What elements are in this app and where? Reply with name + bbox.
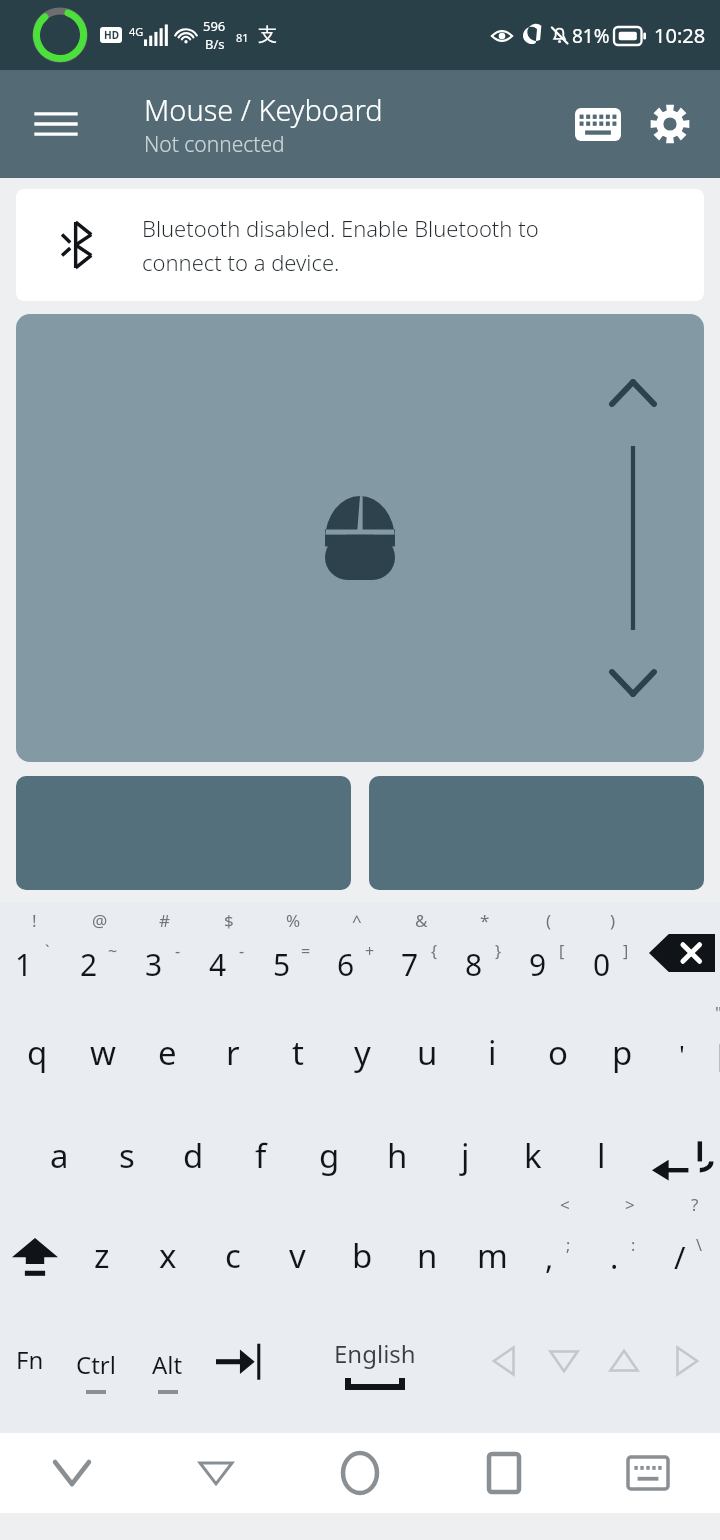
button[interactable]: Bluetooth disabled. Enable Bluetooth to: [16, 189, 704, 301]
button[interactable]: 5: [259, 903, 323, 1003]
button[interactable]: 8: [451, 903, 515, 1003]
button[interactable]: d: [160, 1109, 227, 1209]
staticText: @: [92, 909, 108, 932]
staticText: ): [610, 909, 616, 932]
staticText: *: [480, 909, 490, 932]
button[interactable]: Enter: [635, 1109, 720, 1209]
button[interactable]: h: [363, 1109, 431, 1209]
button[interactable]: x: [135, 1209, 200, 1309]
staticText: =: [301, 940, 311, 962]
button[interactable]: Left click: [16, 776, 351, 890]
button[interactable]: /: [655, 1209, 720, 1309]
button[interactable]: y: [330, 1003, 395, 1109]
staticText: p: [612, 1030, 633, 1075]
button[interactable]: Home: [288, 1433, 432, 1513]
button[interactable]: Show keyboard: [562, 88, 634, 160]
button[interactable]: Hide keyboard: [0, 1433, 144, 1513]
staticText: k: [524, 1133, 542, 1178]
staticText: i: [488, 1030, 497, 1075]
button[interactable]: 2: [65, 903, 130, 1003]
staticText: ?: [691, 1193, 699, 1216]
staticText: #: [159, 909, 170, 932]
button[interactable]: z: [69, 1209, 135, 1309]
staticText: ;: [566, 1234, 571, 1256]
button[interactable]: Settings: [634, 88, 706, 160]
button[interactable]: Space, English: [276, 1309, 474, 1433]
button[interactable]: Recent apps: [432, 1433, 576, 1513]
staticText: [: [559, 940, 565, 962]
button[interactable]: .: [590, 1209, 655, 1309]
button[interactable]: Arrow up: [594, 1309, 654, 1433]
staticText: ': [679, 1036, 685, 1071]
button[interactable]: j: [431, 1109, 499, 1209]
button[interactable]: Arrow left: [474, 1309, 534, 1433]
button[interactable]: n: [395, 1209, 460, 1309]
staticText: g: [319, 1133, 340, 1178]
button[interactable]: r: [200, 1003, 265, 1109]
staticText: w: [90, 1030, 116, 1075]
button[interactable]: 3: [130, 903, 195, 1003]
staticText: Mouse / Keyboard: [144, 90, 383, 129]
staticText: m: [477, 1233, 508, 1278]
button[interactable]: i: [460, 1003, 525, 1109]
button[interactable]: 0: [579, 903, 643, 1003]
staticText: u: [417, 1030, 438, 1075]
button[interactable]: t: [265, 1003, 330, 1109]
button[interactable]: m: [460, 1209, 525, 1309]
button[interactable]: Ctrl: [60, 1309, 132, 1433]
staticText: ]: [623, 940, 629, 962]
button[interactable]: b: [330, 1209, 395, 1309]
button[interactable]: [643, 903, 720, 1003]
staticText: q: [27, 1030, 48, 1075]
staticText: h: [387, 1133, 408, 1178]
button[interactable]: e: [135, 1003, 200, 1109]
button[interactable]: w: [70, 1003, 135, 1109]
button[interactable]: Arrow down: [534, 1309, 594, 1433]
button[interactable]: l: [567, 1109, 635, 1209]
staticText: ": [715, 1001, 720, 1024]
button[interactable]: ,: [525, 1209, 590, 1309]
button[interactable]: Shift: [0, 1209, 69, 1309]
staticText: c: [225, 1233, 241, 1278]
button[interactable]: o: [525, 1003, 590, 1109]
button[interactable]: s: [93, 1109, 160, 1209]
staticText: ,: [545, 1236, 554, 1278]
button[interactable]: 6: [323, 903, 387, 1003]
button[interactable]: c: [200, 1209, 265, 1309]
staticText: f: [255, 1133, 267, 1178]
staticText: -: [175, 940, 181, 962]
button[interactable]: 4: [195, 903, 259, 1003]
staticText: English: [334, 1337, 416, 1370]
button[interactable]: Switch keyboard: [576, 1433, 720, 1513]
button[interactable]: Touchpad: [16, 314, 704, 762]
button[interactable]: 1: [0, 903, 65, 1003]
button[interactable]: ': [655, 1003, 720, 1109]
staticText: v: [289, 1233, 306, 1278]
button[interactable]: Scroll: [606, 314, 660, 762]
staticText: l: [597, 1133, 606, 1178]
staticText: -: [239, 940, 245, 962]
staticText: n: [417, 1233, 438, 1278]
button[interactable]: f: [227, 1109, 295, 1209]
staticText: j: [461, 1133, 470, 1178]
staticText: 1: [15, 944, 33, 985]
button[interactable]: p: [590, 1003, 655, 1109]
staticText: {: [431, 940, 438, 962]
button[interactable]: Tab: [202, 1309, 276, 1433]
button[interactable]: k: [499, 1109, 567, 1209]
button[interactable]: Alt: [132, 1309, 202, 1433]
button[interactable]: Right click: [369, 776, 704, 890]
button[interactable]: g: [295, 1109, 363, 1209]
button[interactable]: Open navigation drawer: [18, 86, 94, 162]
button[interactable]: Fn: [0, 1309, 60, 1433]
button[interactable]: q: [4, 1003, 70, 1109]
staticText: |: [713, 1035, 720, 1073]
button[interactable]: a: [26, 1109, 93, 1209]
button[interactable]: Arrow right: [654, 1309, 720, 1433]
staticText: 6: [337, 944, 355, 985]
button[interactable]: 9: [515, 903, 579, 1003]
button[interactable]: 7: [387, 903, 451, 1003]
button[interactable]: u: [395, 1003, 460, 1109]
button[interactable]: v: [265, 1209, 330, 1309]
button[interactable]: Back: [144, 1433, 288, 1513]
